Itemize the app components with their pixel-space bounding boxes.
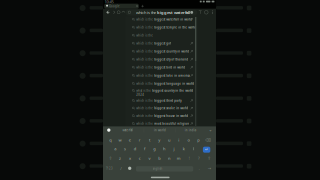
staticText: r: [139, 137, 141, 143]
staticText: biggest waterfall in world: [154, 18, 192, 21]
staticText: h: [163, 146, 165, 151]
staticText: biggest country in world: [154, 50, 189, 53]
staticText: which is the: [136, 42, 154, 45]
staticText: ⌄: [209, 127, 212, 132]
staticText: biggest country in the world: [152, 89, 193, 92]
button[interactable]: which is the: [0, 0, 320, 180]
button[interactable]: which is the: [0, 0, 320, 180]
staticText: q: [109, 137, 111, 143]
staticText: biggest city of thailand: [154, 58, 188, 61]
staticText: b: [158, 155, 160, 161]
staticText: z: [119, 155, 121, 161]
staticText: biggest house in world: [154, 114, 188, 118]
staticText: ⇧: [109, 156, 112, 160]
button[interactable]: which is the: [0, 0, 320, 180]
staticText: which is the: [136, 74, 154, 77]
staticText: →: [208, 166, 211, 171]
staticText: /: [120, 166, 121, 171]
staticText: f: [144, 146, 145, 151]
staticText: 2024: [136, 93, 144, 96]
staticText: biggest lake in america: [154, 74, 190, 77]
button[interactable]: which is the: [0, 0, 320, 180]
staticText: biggest temple in the world: [154, 26, 196, 29]
button[interactable]: which is the: [0, 0, 320, 180]
staticText: biggest language in world: [154, 82, 194, 85]
staticText: which is the: [136, 34, 153, 37]
staticText: which is the: [136, 58, 154, 61]
staticText: biggest girl: [154, 42, 171, 45]
staticText: m: [177, 155, 181, 161]
staticText: k: [183, 146, 185, 151]
staticText: l: [193, 146, 194, 151]
staticText: waterfall: [122, 128, 133, 132]
staticText: in world: [154, 128, 166, 132]
button[interactable]: Google: [0, 0, 320, 180]
staticText: w: [119, 137, 122, 143]
button[interactable]: which is the: [0, 0, 320, 180]
button[interactable]: which is the: [0, 0, 320, 180]
staticText: in india: [185, 128, 196, 132]
button[interactable]: which is the: [0, 0, 320, 180]
staticText: j: [173, 146, 174, 151]
staticText: biggest snake in world: [154, 106, 188, 110]
button[interactable]: which is the: [0, 0, 320, 180]
staticText: u: [168, 137, 170, 143]
staticText: ⇧: [207, 156, 210, 160]
button[interactable]: what is the: [0, 0, 320, 180]
staticText: d: [134, 146, 136, 151]
staticText: which is the: [136, 114, 154, 118]
staticText: t: [149, 137, 150, 143]
staticText: biggest third party: [154, 99, 181, 102]
button[interactable]: which is the: [0, 0, 320, 180]
staticText: a: [114, 146, 116, 151]
staticText: v: [148, 155, 150, 161]
staticText: n: [168, 155, 170, 161]
staticText: which is the: [136, 50, 154, 53]
staticText: 10:45: [105, 0, 114, 4]
staticText: g: [153, 146, 155, 151]
staticText: ⌫: [205, 138, 211, 142]
staticText: s: [124, 146, 126, 151]
staticText: ?123: [106, 167, 113, 170]
staticText: which is the: [136, 99, 154, 102]
staticText: which is the: [136, 122, 154, 125]
staticText: e: [129, 137, 131, 143]
staticText: i: [178, 137, 179, 143]
staticText: which is the: [136, 10, 157, 15]
staticText: p: [197, 137, 199, 143]
staticText: ↵: [205, 147, 208, 152]
button[interactable]: which is the: [0, 0, 320, 180]
staticText: what is the: [136, 89, 152, 92]
button[interactable]: which is the: [0, 0, 320, 180]
staticText: !: [189, 155, 190, 161]
staticText: English: [152, 167, 162, 170]
staticText: .: [199, 166, 200, 171]
staticText: which is the: [136, 66, 154, 69]
staticText: x: [129, 155, 131, 161]
staticText: y: [158, 137, 160, 143]
staticText: most beautiful religion: [154, 122, 189, 125]
staticText: o: [187, 137, 189, 143]
button[interactable]: which is the: [0, 0, 320, 180]
staticText: c: [139, 155, 141, 161]
staticText: which is the: [136, 106, 154, 110]
staticText: biggest bird in world: [154, 66, 185, 69]
staticText: ?: [198, 155, 200, 161]
staticText: which is the: [136, 18, 154, 21]
staticText: biggest waterfall: [157, 10, 190, 15]
button[interactable]: which is the: [0, 0, 320, 180]
staticText: Google: [109, 4, 120, 8]
staticText: which is the: [136, 82, 154, 85]
staticText: which is the: [136, 26, 154, 29]
